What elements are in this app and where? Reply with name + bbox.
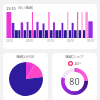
- staticText: 03:10: [67, 39, 74, 43]
- staticText: 23:10: [6, 6, 16, 11]
- other: 睡眠の内訳 円グラフ: [9, 62, 43, 96]
- staticText: 01:10: [47, 39, 54, 43]
- staticText: 80: [69, 75, 80, 87]
- button[interactable]: 睡眠の内訳: [3, 53, 48, 100]
- staticText: 睡眠の内訳: [16, 55, 35, 60]
- button[interactable]: 23:10: [3, 4, 97, 49]
- staticText: 00:10: [26, 39, 33, 43]
- staticText: 分: [79, 62, 82, 65]
- staticText: 20: [74, 61, 79, 66]
- button[interactable]: 睡眠スコア: [52, 53, 97, 100]
- other: 心拍: [68, 61, 73, 66]
- staticText: 睡眠スコア: [65, 55, 84, 60]
- staticText: 05:10: [87, 39, 94, 43]
- staticText: 23:10: [6, 39, 13, 43]
- other: 睡眠スコア 80: [61, 68, 88, 95]
- staticText: 深い睡眠: [18, 6, 33, 11]
